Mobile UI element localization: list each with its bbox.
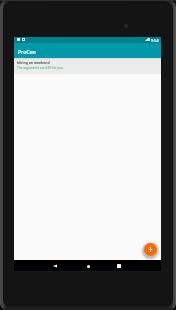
button[interactable]: Back [43,260,67,272]
button[interactable]: hiking on weekend [14,58,161,74]
button[interactable]: Recents [107,260,131,272]
staticText: 9:54 [151,38,159,43]
button[interactable]: Home [76,260,100,272]
staticText: The arguments are 63% for you. [17,66,64,70]
button[interactable]: ProCon [14,43,161,58]
button[interactable]: Add [144,243,157,256]
staticText: ProCon [18,49,36,56]
staticText: hiking on weekend [17,60,50,65]
